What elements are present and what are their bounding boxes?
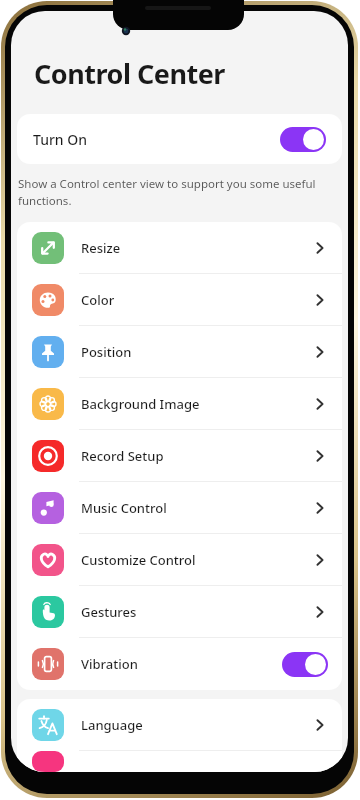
button[interactable]: Toggle — [280, 127, 326, 152]
staticText: Turn On — [33, 130, 88, 149]
other: Open Customize Control — [312, 552, 328, 568]
button[interactable] — [17, 751, 342, 772]
other: Open Color — [312, 292, 328, 308]
staticText: Color — [81, 291, 115, 309]
button[interactable]: Resize — [17, 222, 342, 274]
button[interactable]: Toggle — [282, 652, 328, 677]
button[interactable]: Turn On — [17, 114, 342, 164]
other: Open Gestures — [312, 604, 328, 620]
button[interactable]: Position — [17, 326, 342, 378]
button[interactable]: Music Control — [17, 482, 342, 534]
button[interactable]: Record Setup — [17, 430, 342, 482]
button[interactable]: Vibration — [17, 638, 342, 690]
other: Open Language — [312, 717, 328, 733]
other: Open Music Control — [312, 500, 328, 516]
staticText: Gestures — [81, 603, 137, 621]
staticText: Background Image — [81, 395, 200, 413]
other: Open Position — [312, 344, 328, 360]
staticText: Control Center — [34, 55, 225, 92]
staticText: Language — [81, 716, 143, 734]
staticText: Show a Control center view to support yo… — [18, 176, 328, 208]
button[interactable]: Gestures — [17, 586, 342, 638]
button[interactable]: Language — [17, 699, 342, 751]
button[interactable]: Customize Control — [17, 534, 342, 586]
staticText: Music Control — [81, 499, 167, 517]
other: Open Background Image — [312, 396, 328, 412]
staticText: Record Setup — [81, 447, 164, 465]
staticText: Vibration — [81, 655, 138, 673]
staticText: Customize Control — [81, 551, 196, 569]
staticText: Resize — [81, 239, 121, 257]
button[interactable]: Background Image — [17, 378, 342, 430]
other: Open Record Setup — [312, 448, 328, 464]
button[interactable]: Color — [17, 274, 342, 326]
other: Open Resize — [312, 240, 328, 256]
staticText: Position — [81, 343, 132, 361]
